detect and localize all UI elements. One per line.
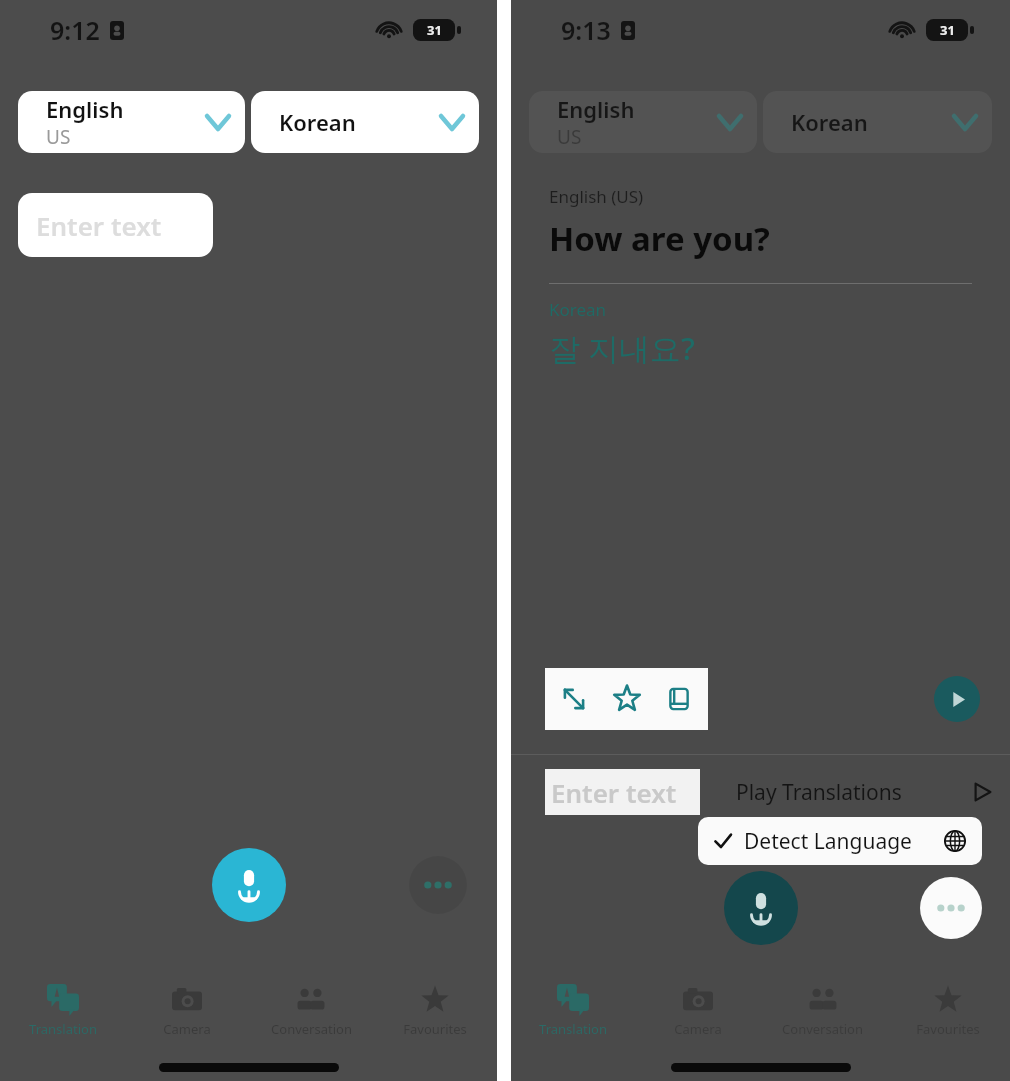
button[interactable]: Microphone <box>212 848 286 922</box>
button[interactable]: Camera <box>635 973 760 1047</box>
button[interactable]: English <box>18 91 245 153</box>
staticText: Camera <box>674 1020 722 1038</box>
staticText: Enter text <box>551 775 677 810</box>
staticText: 9:12 <box>50 13 100 47</box>
staticText: Translation <box>29 1020 97 1038</box>
staticText: Play Translations <box>736 778 902 807</box>
staticText: Korean <box>549 298 607 321</box>
staticText: Korean <box>791 107 868 137</box>
staticText: 31 <box>940 21 955 39</box>
staticText: 잘 지내요? <box>549 327 695 369</box>
staticText: English <box>46 94 124 124</box>
button[interactable]: Detect Language <box>712 817 968 865</box>
button[interactable]: More options <box>920 877 982 939</box>
staticText: Enter text <box>36 208 162 243</box>
staticText: English (US) <box>549 185 644 208</box>
staticText: Camera <box>163 1020 211 1038</box>
staticText: Favourites <box>403 1020 467 1038</box>
button[interactable]: Play Translations <box>736 769 994 815</box>
button[interactable]: Microphone <box>724 871 798 945</box>
button[interactable]: Enter text <box>18 193 213 257</box>
button[interactable]: Translation <box>0 973 125 1047</box>
staticText: Conversation <box>271 1020 352 1038</box>
button[interactable]: Korean <box>251 91 479 153</box>
button[interactable]: Play <box>934 676 980 722</box>
staticText: How are you? <box>549 216 770 261</box>
staticText: Favourites <box>916 1020 980 1038</box>
button[interactable]: English <box>529 91 757 153</box>
staticText: Korean <box>279 107 356 137</box>
button[interactable]: Translation <box>511 973 635 1047</box>
button[interactable]: Camera <box>125 973 249 1047</box>
button[interactable]: Favourite <box>604 676 650 722</box>
button[interactable]: Conversation <box>760 973 885 1047</box>
button[interactable]: Enter text <box>545 769 700 815</box>
staticText: Conversation <box>782 1020 863 1038</box>
staticText: Detect Language <box>744 827 912 856</box>
staticText: Translation <box>539 1020 607 1038</box>
staticText: US <box>46 124 71 150</box>
staticText: US <box>557 124 582 150</box>
button[interactable]: More options <box>409 856 467 914</box>
button[interactable]: Favourites <box>373 973 497 1047</box>
staticText: 9:13 <box>561 13 611 47</box>
button[interactable]: Expand <box>551 676 597 722</box>
staticText: English <box>557 94 635 124</box>
staticText: 31 <box>427 21 442 39</box>
button[interactable]: Korean <box>763 91 992 153</box>
button[interactable]: Dictionary <box>656 676 702 722</box>
button[interactable]: Conversation <box>249 973 373 1047</box>
